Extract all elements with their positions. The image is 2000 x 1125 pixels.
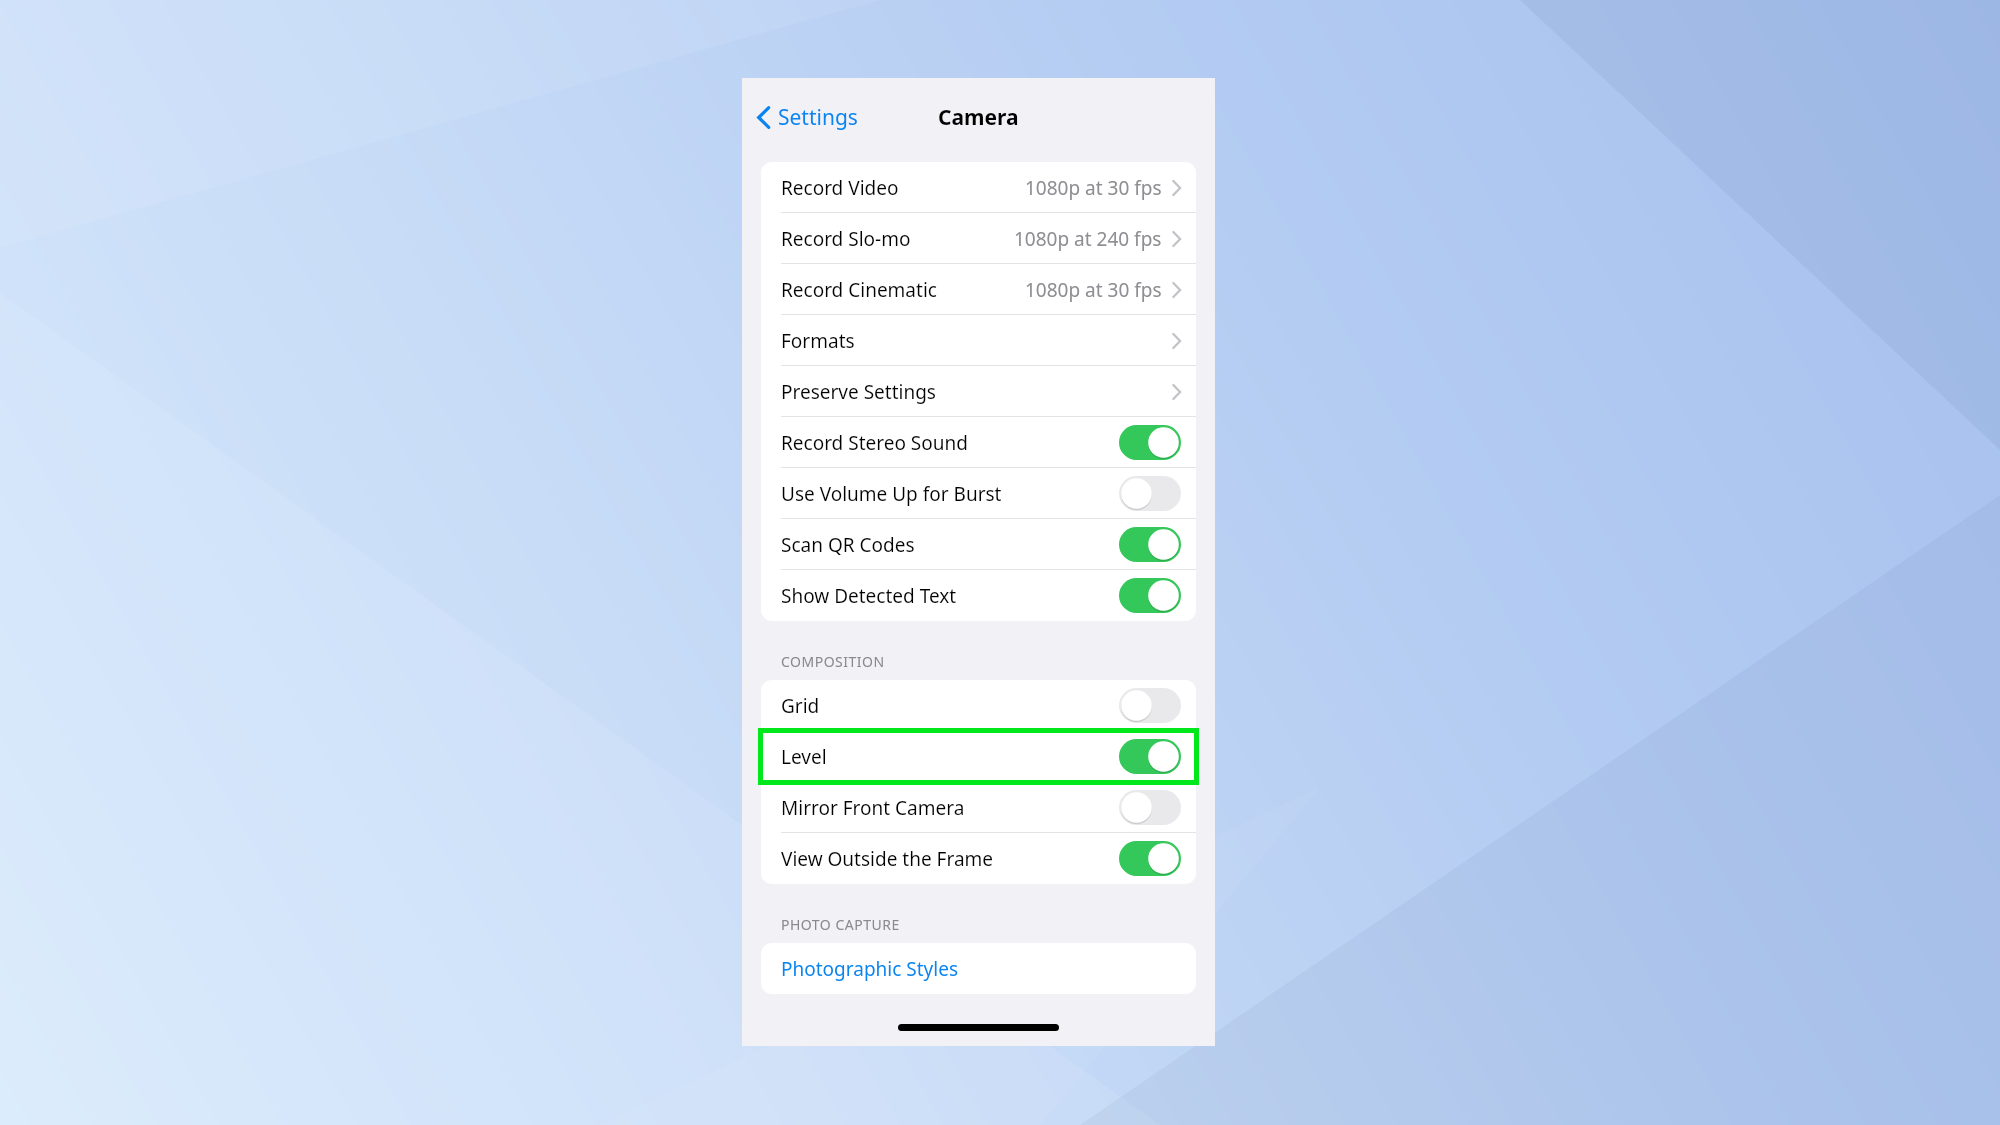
staticText: Mirror Front Camera (781, 795, 965, 821)
staticText: 1080p at 30 fps (1025, 175, 1162, 201)
button[interactable]: Scan QR Codes (761, 519, 1196, 570)
button[interactable]: Record Cinematic (761, 264, 1196, 315)
button[interactable]: Record Slo-mo (761, 213, 1196, 264)
staticText: Level (781, 744, 827, 770)
staticText: Use Volume Up for Burst (781, 481, 1002, 507)
staticText: Settings (778, 103, 858, 132)
staticText: Camera (938, 103, 1019, 132)
button[interactable]: Toggle on (1119, 527, 1181, 562)
button[interactable]: Use Volume Up for Burst (761, 468, 1196, 519)
button[interactable]: Photographic Styles (761, 943, 1196, 994)
button[interactable]: Formats (761, 315, 1196, 366)
button[interactable]: View Outside the Frame (761, 833, 1196, 884)
staticText: Preserve Settings (781, 379, 936, 405)
staticText: Show Detected Text (781, 583, 957, 609)
button[interactable]: Toggle on (1119, 425, 1181, 460)
staticText: Photographic Styles (781, 956, 958, 982)
staticText: View Outside the Frame (781, 846, 994, 872)
button[interactable]: Toggle off (1119, 476, 1181, 511)
button[interactable]: Toggle off (1119, 790, 1181, 825)
button[interactable]: Mirror Front Camera (761, 782, 1196, 833)
staticText: Scan QR Codes (781, 532, 915, 558)
button[interactable]: Toggle on (1119, 841, 1181, 876)
staticText: Formats (781, 328, 855, 354)
button[interactable]: Grid (761, 680, 1196, 731)
staticText: 1080p at 240 fps (1014, 226, 1162, 252)
staticText: Record Stereo Sound (781, 430, 968, 456)
button[interactable]: Toggle on (1119, 739, 1181, 774)
button[interactable]: Preserve Settings (761, 366, 1196, 417)
button[interactable]: Show Detected Text (761, 570, 1196, 621)
staticText: Record Cinematic (781, 277, 937, 303)
button[interactable]: Level (761, 731, 1196, 782)
staticText: COMPOSITION (781, 652, 885, 671)
staticText: PHOTO CAPTURE (781, 915, 900, 934)
button[interactable]: Record Stereo Sound (761, 417, 1196, 468)
button[interactable]: Toggle on (1119, 578, 1181, 613)
button[interactable]: Toggle off (1119, 688, 1181, 723)
button[interactable]: Record Video (761, 162, 1196, 213)
staticText: Record Slo-mo (781, 226, 911, 252)
staticText: 1080p at 30 fps (1025, 277, 1162, 303)
staticText: Record Video (781, 175, 899, 201)
staticText: Grid (781, 693, 820, 719)
button[interactable]: Settings (752, 96, 863, 139)
